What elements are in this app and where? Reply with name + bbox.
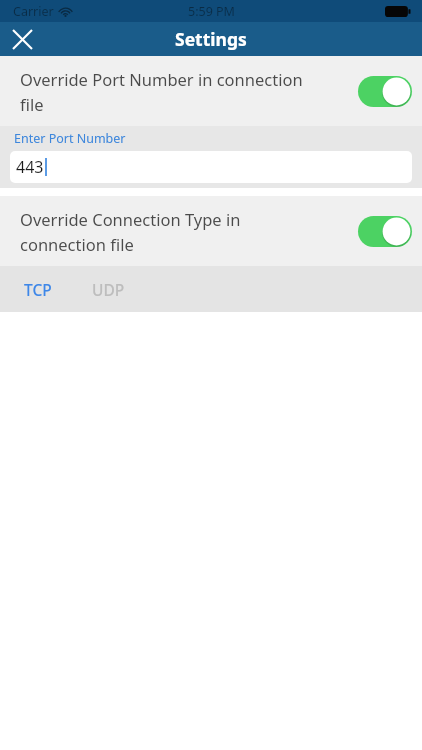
button[interactable]: 443 [10, 151, 412, 183]
button[interactable]: Toggle [358, 216, 412, 247]
staticText: Override Port Number in connection [20, 68, 303, 90]
staticText: 5:59 PM [188, 3, 235, 20]
button[interactable]: TCP [12, 266, 64, 312]
staticText: Enter Port Number [14, 130, 126, 147]
staticText: Settings [175, 27, 247, 51]
button[interactable]: UDP [80, 266, 136, 312]
staticText: 443 [16, 156, 44, 178]
button[interactable]: Toggle [358, 76, 412, 107]
staticText: connection file [20, 233, 134, 255]
button[interactable]: Override Port Number in connection [0, 56, 422, 126]
staticText: Carrier [13, 3, 54, 20]
staticText: UDP [92, 279, 125, 300]
staticText: TCP [24, 279, 52, 300]
button[interactable]: Close [0, 22, 44, 56]
staticText: file [20, 93, 44, 115]
staticText: Override Connection Type in [20, 208, 241, 230]
button[interactable]: Override Connection Type in [0, 196, 422, 266]
